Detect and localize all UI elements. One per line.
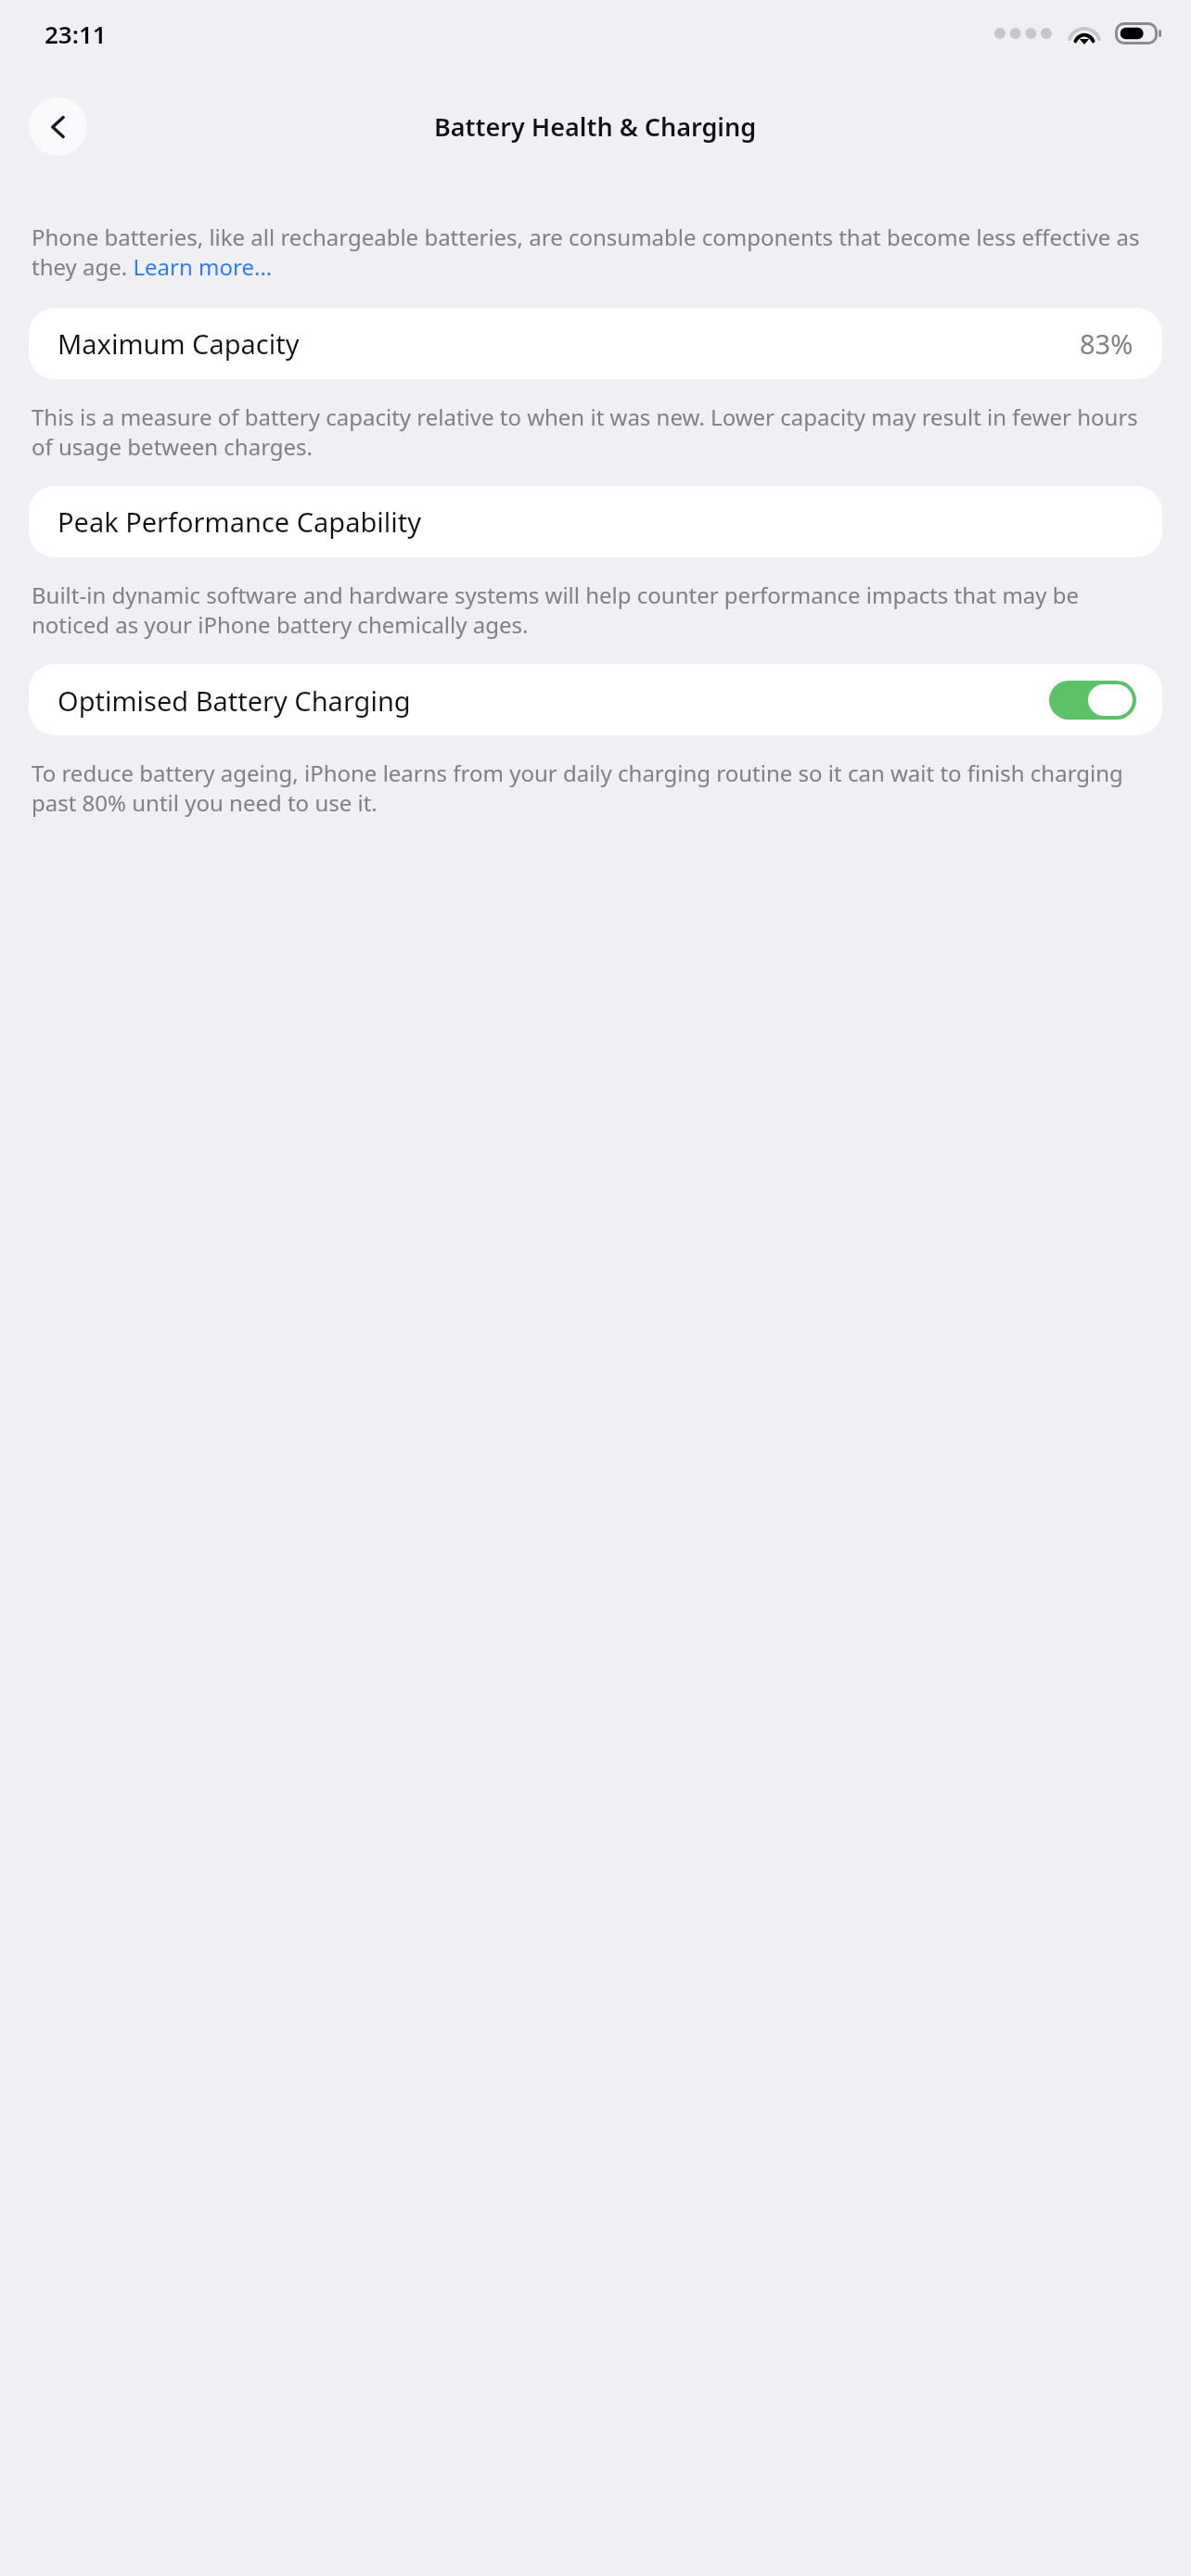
button[interactable]: Back: [29, 97, 87, 156]
button[interactable]: Optimised Battery Charging: [29, 664, 1162, 735]
button[interactable]: Optimised Battery Charging toggle: [1049, 681, 1136, 720]
staticText: Battery Health & Charging: [434, 109, 757, 144]
staticText: To reduce battery ageing, iPhone learns …: [32, 758, 1159, 818]
staticText: Phone batteries, like all rechargeable b…: [32, 222, 1159, 282]
staticText: This is a measure of battery capacity re…: [32, 402, 1159, 462]
staticText: 23:11: [45, 18, 107, 50]
staticText: Built-in dynamic software and hardware s…: [32, 580, 1159, 640]
staticText: Optimised Battery Charging: [58, 682, 411, 719]
button[interactable]: Peak Performance Capability: [29, 486, 1162, 557]
staticText: 83%: [1080, 325, 1133, 362]
staticText: Maximum Capacity: [58, 325, 300, 362]
staticText: Peak Performance Capability: [58, 504, 421, 540]
button[interactable]: Maximum Capacity: [29, 308, 1162, 379]
